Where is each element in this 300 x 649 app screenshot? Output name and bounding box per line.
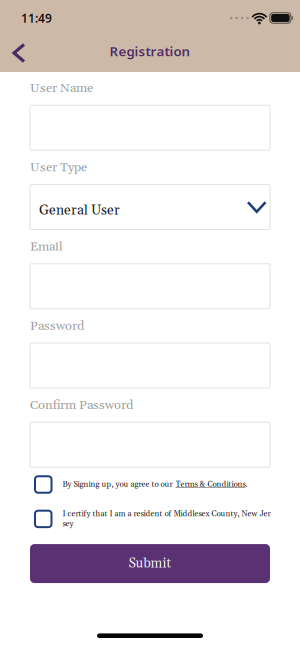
staticText: Confirm Password [30, 397, 133, 413]
staticText: Terms & Conditions [175, 479, 245, 490]
staticText: I certify that I am a resident of Middle… [62, 509, 270, 529]
staticText: User Name [30, 80, 93, 96]
staticText: . [245, 479, 247, 490]
button[interactable]: Terms & Conditions [172, 479, 245, 490]
button[interactable]: Certify residency [35, 511, 51, 527]
button[interactable]: Back [0, 32, 36, 69]
button[interactable]: Agree to Terms and Conditions [35, 476, 51, 493]
staticText: Submit [128, 555, 171, 572]
staticText: Password [30, 318, 84, 334]
staticText: Email [30, 238, 63, 255]
staticText: 11:49 [21, 10, 52, 26]
staticText: User Type [30, 159, 87, 175]
button[interactable]: Submit [30, 544, 270, 583]
button[interactable]: User Type, General User [30, 184, 270, 229]
staticText: General User [39, 202, 120, 219]
staticText: Registration [109, 42, 190, 60]
staticText: By Signing up, you agree to our [62, 479, 172, 490]
